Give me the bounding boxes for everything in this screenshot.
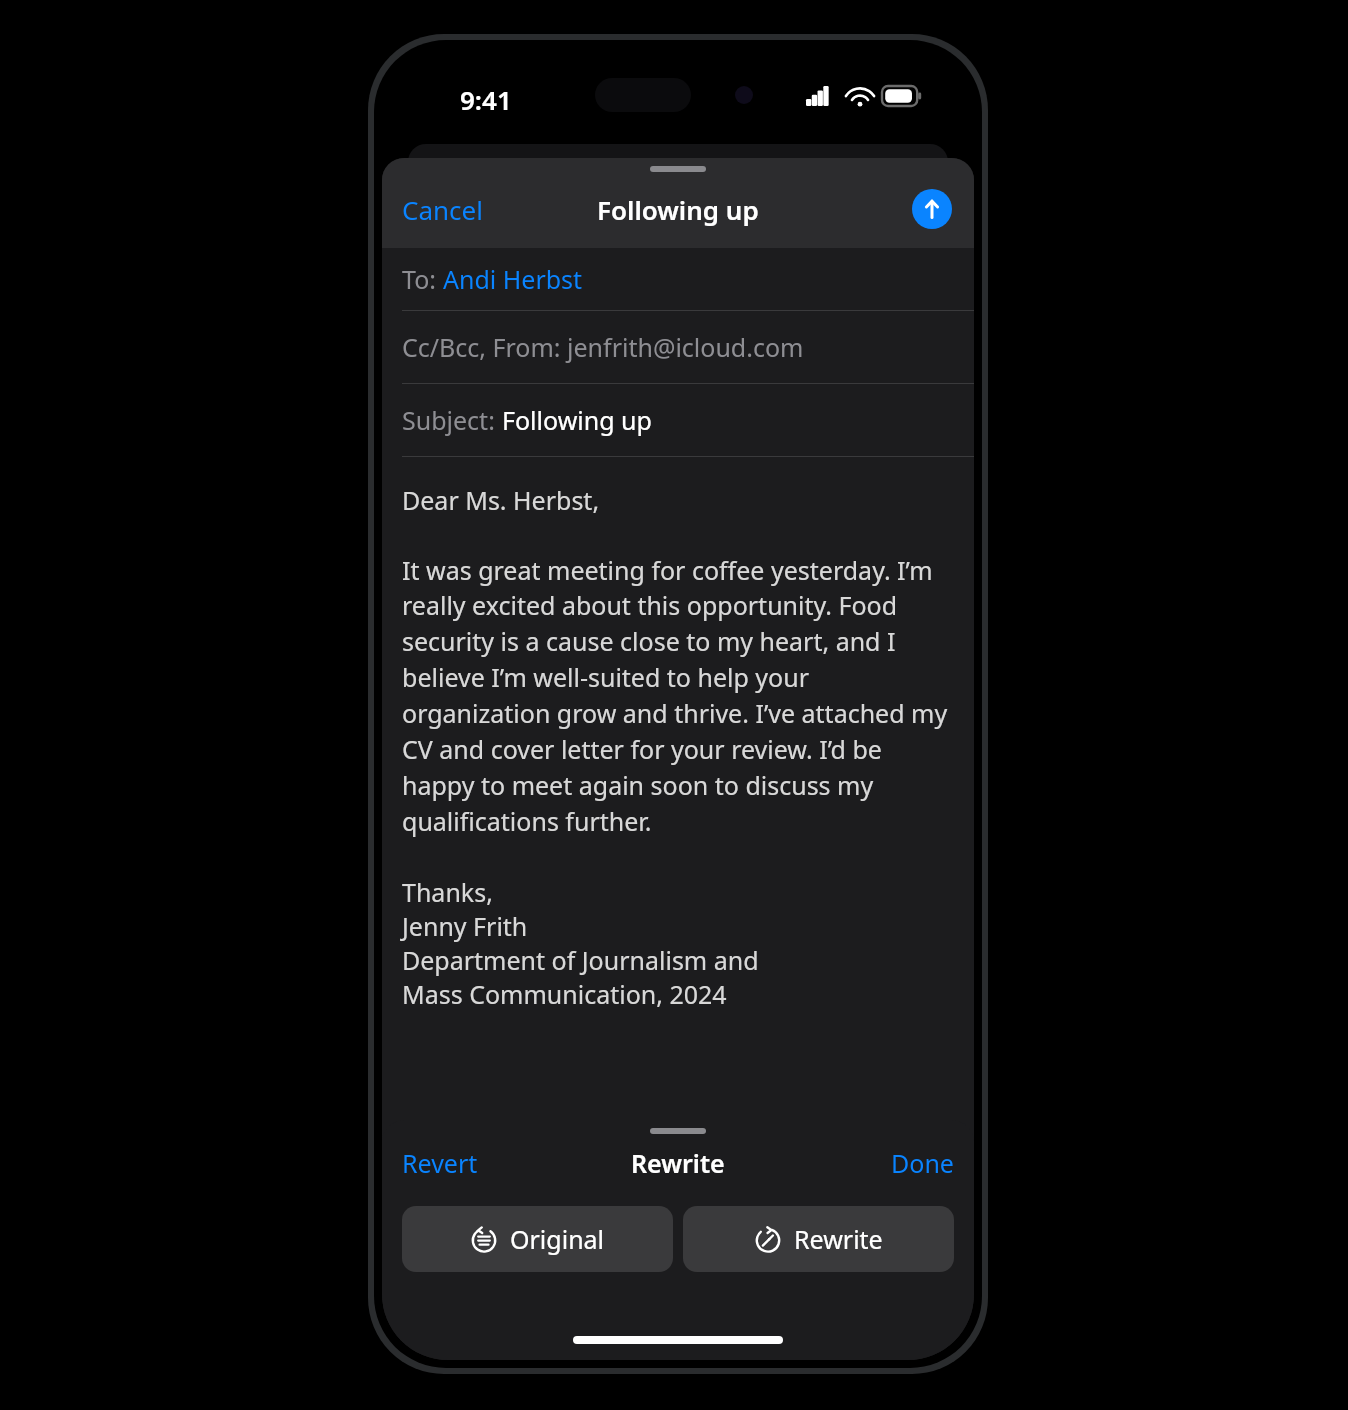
staticText: Dear Ms. Herbst,: [402, 483, 600, 517]
button[interactable]: Done: [871, 1138, 974, 1188]
button[interactable]: Revert: [382, 1138, 498, 1188]
staticText: Mass Communication, 2024: [402, 977, 727, 1011]
staticText: Following up: [502, 403, 652, 437]
button[interactable]: Rewrite: [683, 1206, 954, 1272]
staticText: Rewrite: [631, 1146, 725, 1180]
staticText: Department of Journalism and: [402, 943, 759, 977]
staticText: Rewrite: [794, 1222, 883, 1256]
staticText: Andi Herbst: [443, 262, 583, 296]
staticText: Original: [510, 1222, 605, 1256]
button[interactable]: Subject:: [382, 384, 974, 456]
button[interactable]: To:: [382, 248, 974, 310]
staticText: Jenny Frith: [402, 909, 528, 943]
button[interactable]: Send: [912, 189, 952, 229]
staticText: To:: [402, 262, 443, 296]
staticText: Thanks,: [402, 875, 493, 909]
button[interactable]: Cancel: [382, 184, 503, 235]
button[interactable]: Cc/Bcc, From: jenfrith@icloud.com: [382, 311, 974, 383]
staticText: Subject:: [402, 403, 502, 437]
staticText: Cc/Bcc, From: jenfrith@icloud.com: [402, 330, 804, 364]
staticText: 9:41: [460, 82, 512, 117]
staticText: Following up: [597, 192, 759, 227]
button[interactable]: Original: [402, 1206, 673, 1272]
staticText: It was great meeting for coffee yesterda…: [402, 553, 952, 839]
